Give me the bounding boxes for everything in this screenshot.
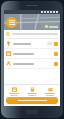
button[interactable]: Person — [24, 85, 40, 97]
button[interactable]: Calendar — [6, 85, 22, 97]
button[interactable]: Action — [54, 42, 58, 46]
button[interactable]: Card — [42, 85, 58, 97]
button[interactable]: Menu — [6, 17, 17, 28]
button[interactable]: Action — [54, 52, 58, 56]
button[interactable]: Action — [4, 39, 60, 48]
button[interactable] — [4, 30, 60, 38]
button[interactable]: Action — [4, 59, 60, 68]
button[interactable] — [6, 97, 58, 104]
button[interactable]: Action — [54, 62, 58, 66]
button[interactable]: Action — [4, 49, 60, 58]
